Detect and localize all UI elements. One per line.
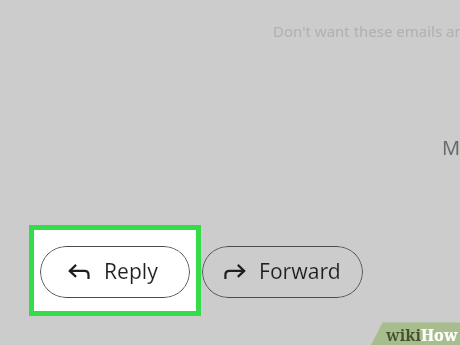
staticText: Reply [104, 257, 158, 286]
button[interactable]: Forward [202, 246, 363, 298]
other: Highlighted Reply button [29, 225, 201, 316]
staticText: How [421, 324, 458, 345]
staticText: wiki [386, 324, 422, 345]
staticText: Don't want these emails an [273, 21, 460, 41]
staticText: M [442, 134, 460, 161]
staticText: Forward [259, 257, 341, 286]
button[interactable]: Reply [40, 246, 190, 298]
